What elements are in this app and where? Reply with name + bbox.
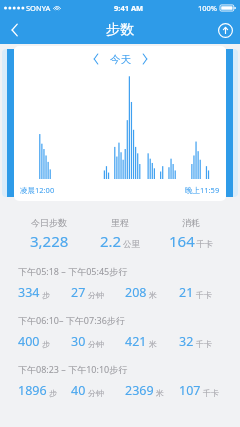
staticText: 步数 (106, 21, 134, 39)
staticText: 32 (179, 333, 194, 350)
staticText: 21 (179, 284, 194, 301)
staticText: 30 (71, 333, 86, 350)
staticText: 421 (125, 333, 147, 350)
staticText: 公里 (123, 239, 140, 250)
staticText: 分钟 (88, 339, 104, 349)
staticText: 步 (42, 290, 50, 300)
staticText: 下午05:18 – 下午05:45步行 (18, 265, 128, 277)
button[interactable]: 下午06:10– 下午07:36步行 (0, 314, 240, 350)
staticText: 晚上11:59 (185, 185, 220, 195)
staticText: 千卡 (196, 239, 213, 250)
button[interactable]: 下午08:23 – 下午10:10步行 (0, 363, 240, 399)
staticText: 米 (149, 339, 157, 349)
staticText: 400 (18, 333, 40, 350)
staticText: 今日步数 (31, 217, 67, 228)
staticText: 1896 (18, 382, 47, 399)
staticText: 334 (18, 284, 40, 301)
staticText: 164 (169, 231, 195, 251)
staticText: 步 (42, 339, 50, 349)
staticText: SONYA (26, 3, 51, 13)
button[interactable]: 下午05:18 – 下午05:45步行 (0, 265, 240, 301)
staticText: 下午06:10– 下午07:36步行 (18, 314, 125, 326)
staticText: 9:41 AM (114, 3, 144, 13)
staticText: 千卡 (196, 339, 212, 349)
staticText: 今天 (110, 53, 131, 66)
staticText: 消耗 (182, 217, 200, 228)
staticText: 米 (149, 290, 157, 300)
staticText: 2369 (125, 382, 154, 399)
staticText: 千卡 (203, 388, 219, 398)
button[interactable]: Share (210, 16, 240, 44)
staticText: 3,228 (30, 231, 69, 251)
staticText: 千卡 (196, 290, 212, 300)
staticText: 208 (125, 284, 147, 301)
staticText: 40 (71, 382, 86, 399)
button[interactable]: Back (0, 16, 30, 44)
button[interactable]: 今日步数 (14, 217, 84, 251)
staticText: 步 (49, 388, 57, 398)
staticText: 下午08:23 – 下午10:10步行 (18, 363, 128, 375)
staticText: 分钟 (88, 388, 104, 398)
staticText: 27 (71, 284, 86, 301)
staticText: 米 (156, 388, 164, 398)
button[interactable]: Next day (137, 49, 153, 69)
staticText: 107 (179, 382, 201, 399)
button[interactable]: 消耗 (155, 217, 226, 251)
staticText: 2.2 (100, 231, 122, 251)
button[interactable]: Previous day (88, 49, 104, 69)
staticText: 凌晨12:00 (20, 185, 55, 195)
button[interactable]: 今天 (104, 53, 137, 66)
staticText: 里程 (111, 217, 129, 228)
staticText: 分钟 (88, 290, 104, 300)
staticText: 100% (198, 3, 218, 13)
button[interactable]: 里程 (84, 217, 155, 251)
